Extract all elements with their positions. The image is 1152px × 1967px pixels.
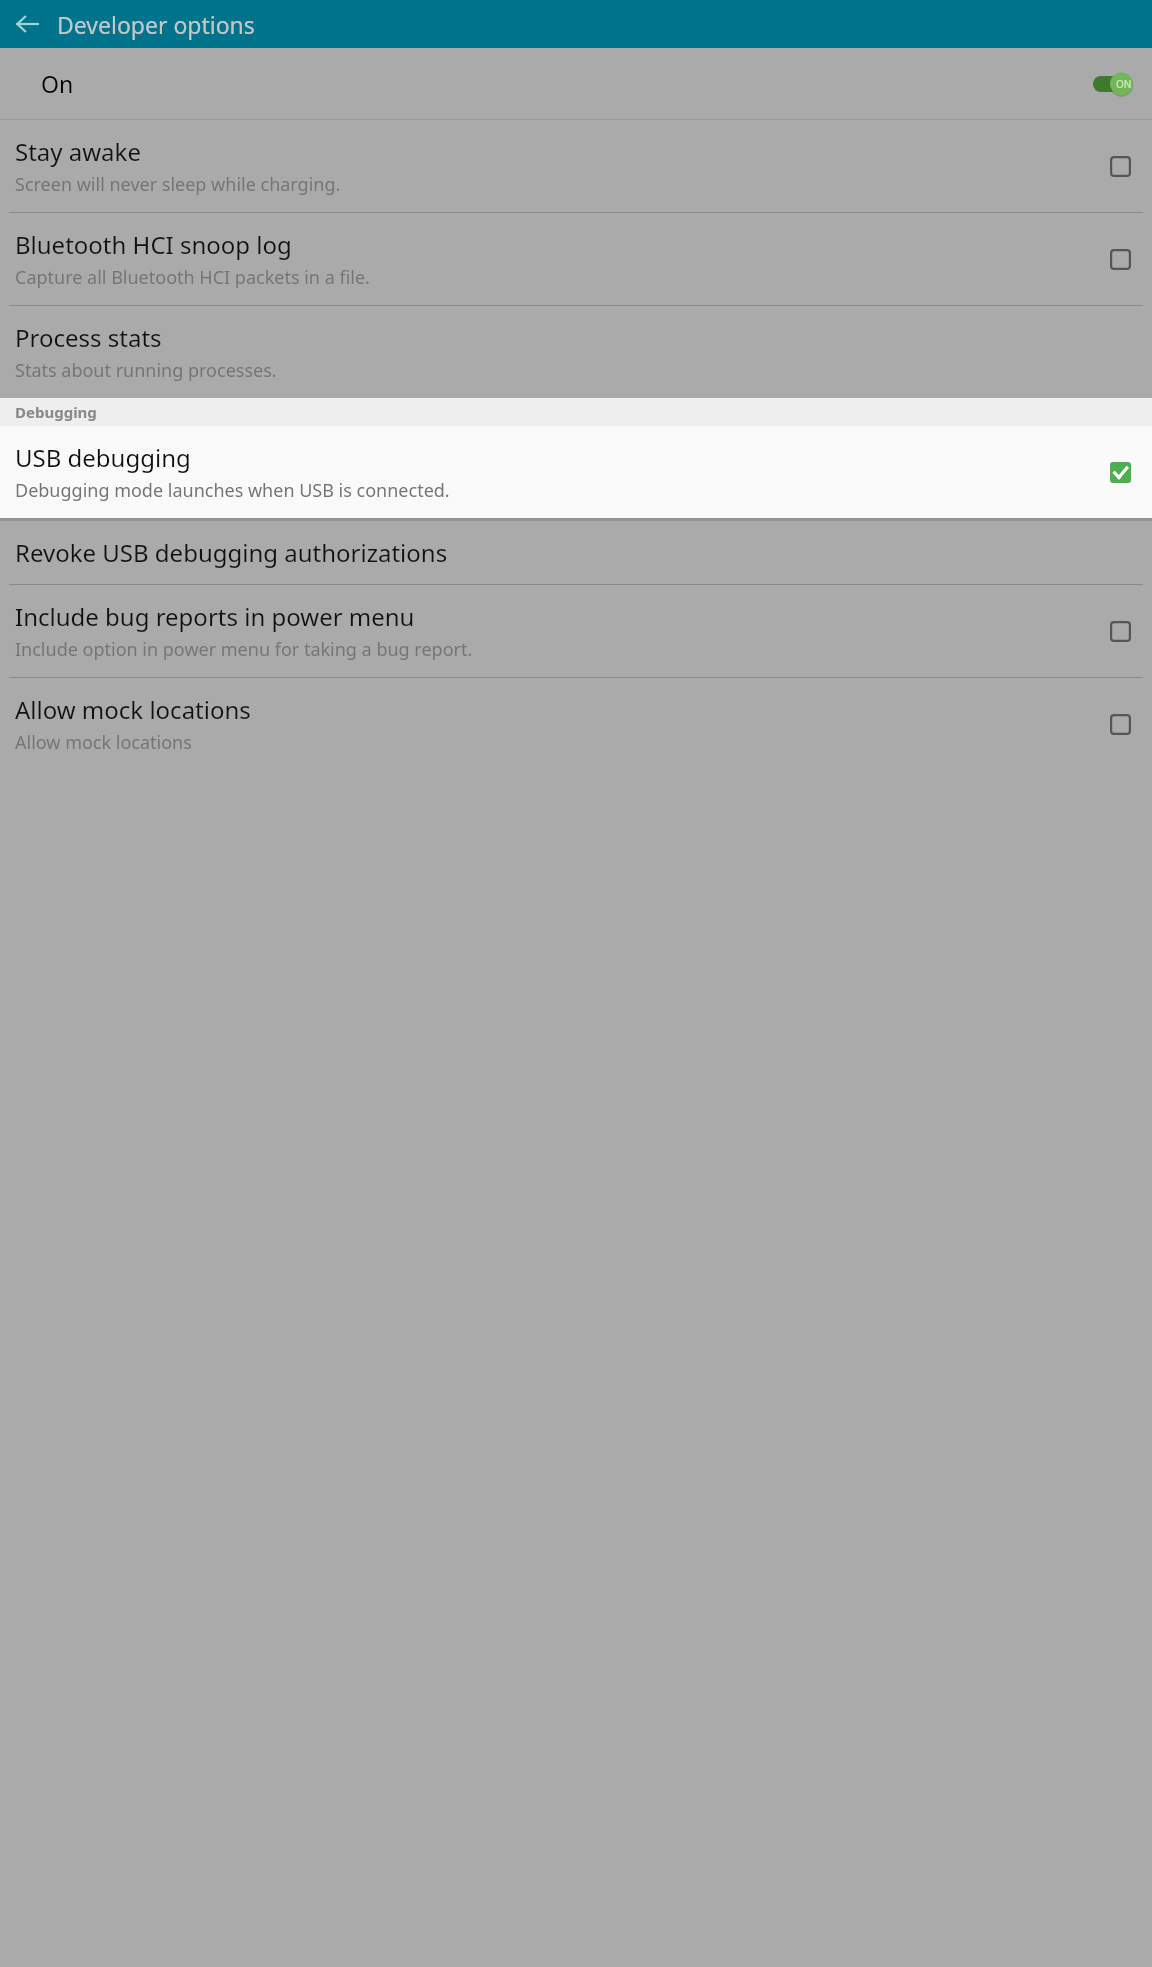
staticText: Stay awake (15, 135, 141, 168)
staticText: Bluetooth HCI snoop log (15, 228, 292, 261)
staticText: Include option in power menu for taking … (15, 637, 473, 662)
staticText: Include bug reports in power menu (15, 600, 415, 633)
button[interactable]: USB debugging (0, 426, 1152, 518)
staticText: Developer options (57, 9, 255, 40)
button[interactable]: Include bug reports in power menu (1103, 614, 1137, 648)
staticText: ON (1116, 77, 1132, 91)
button[interactable]: Revoke USB debugging authorizations (0, 521, 1152, 584)
button[interactable]: Bluetooth HCI snoop log (1103, 242, 1137, 276)
staticText: Debugging mode launches when USB is conn… (15, 478, 450, 503)
button[interactable]: Back (10, 7, 44, 41)
button[interactable]: Allow mock locations (1103, 707, 1137, 741)
button[interactable]: On (0, 48, 1152, 119)
staticText: Revoke USB debugging authorizations (15, 536, 448, 569)
button[interactable]: Bluetooth HCI snoop log (0, 213, 1152, 305)
button[interactable]: Stay awake (0, 120, 1152, 212)
button[interactable]: Developer options on (1093, 70, 1133, 98)
staticText: Stats about running processes. (15, 358, 277, 383)
staticText: Process stats (15, 321, 162, 354)
staticText: Allow mock locations (15, 693, 251, 726)
staticText: USB debugging (15, 441, 191, 474)
button[interactable]: Allow mock locations (0, 678, 1152, 770)
button[interactable]: Include bug reports in power menu (0, 585, 1152, 677)
staticText: On (41, 68, 74, 99)
button[interactable]: USB debugging (1103, 455, 1137, 489)
staticText: Allow mock locations (15, 730, 192, 755)
staticText: Screen will never sleep while charging. (15, 172, 341, 197)
staticText: Debugging (15, 402, 97, 422)
button[interactable]: Process stats (0, 306, 1152, 398)
staticText: Capture all Bluetooth HCI packets in a f… (15, 265, 370, 290)
button[interactable]: Stay awake (1103, 149, 1137, 183)
